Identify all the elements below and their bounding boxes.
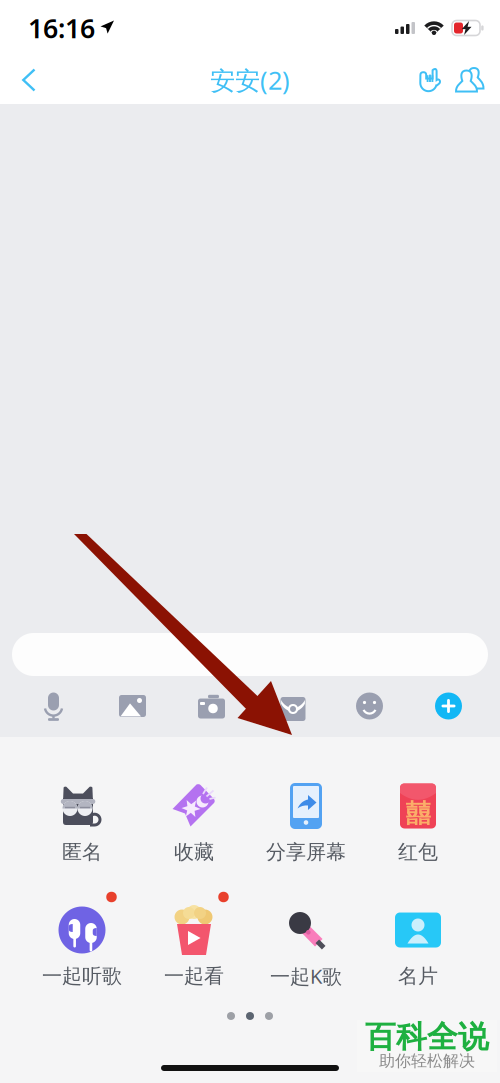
staticText: 名片 (398, 964, 438, 988)
staticText: 助你轻松解决 (379, 1051, 475, 1071)
staticText: 16:16 (28, 10, 95, 46)
button[interactable]: Photos (93, 687, 172, 725)
button[interactable]: 囍 (362, 771, 474, 861)
button[interactable]: 名片 (362, 895, 474, 985)
button[interactable]: Voice message (14, 687, 93, 725)
staticText: 一起K歌 (270, 963, 342, 989)
button[interactable]: 分享屏幕 (250, 771, 362, 861)
button[interactable]: Back (6, 56, 52, 104)
staticText: 囍 (405, 798, 430, 829)
button[interactable]: More (409, 687, 488, 725)
button[interactable]: Video call (251, 687, 330, 725)
button[interactable]: Gesture (412, 56, 450, 104)
button[interactable]: 收藏 (138, 771, 250, 861)
button[interactable]: 一起听歌 (26, 895, 138, 985)
button[interactable]: Emoji (330, 687, 409, 725)
staticText: 一起看 (164, 964, 224, 988)
button[interactable]: 一起K歌 (250, 895, 362, 985)
staticText: 分享屏幕 (266, 840, 346, 864)
button[interactable]: Camera (172, 687, 251, 725)
button[interactable]: 一起看 (138, 895, 250, 985)
staticText: 一起听歌 (42, 964, 122, 988)
staticText: 百科全说 (365, 1018, 489, 1056)
staticText: 红包 (398, 840, 438, 864)
staticText: 安安(2) (210, 63, 290, 97)
button[interactable]: Members (450, 56, 490, 104)
staticText: 收藏 (174, 840, 214, 864)
staticText: 匿名 (62, 840, 102, 864)
button[interactable]: 匿名 (26, 771, 138, 861)
